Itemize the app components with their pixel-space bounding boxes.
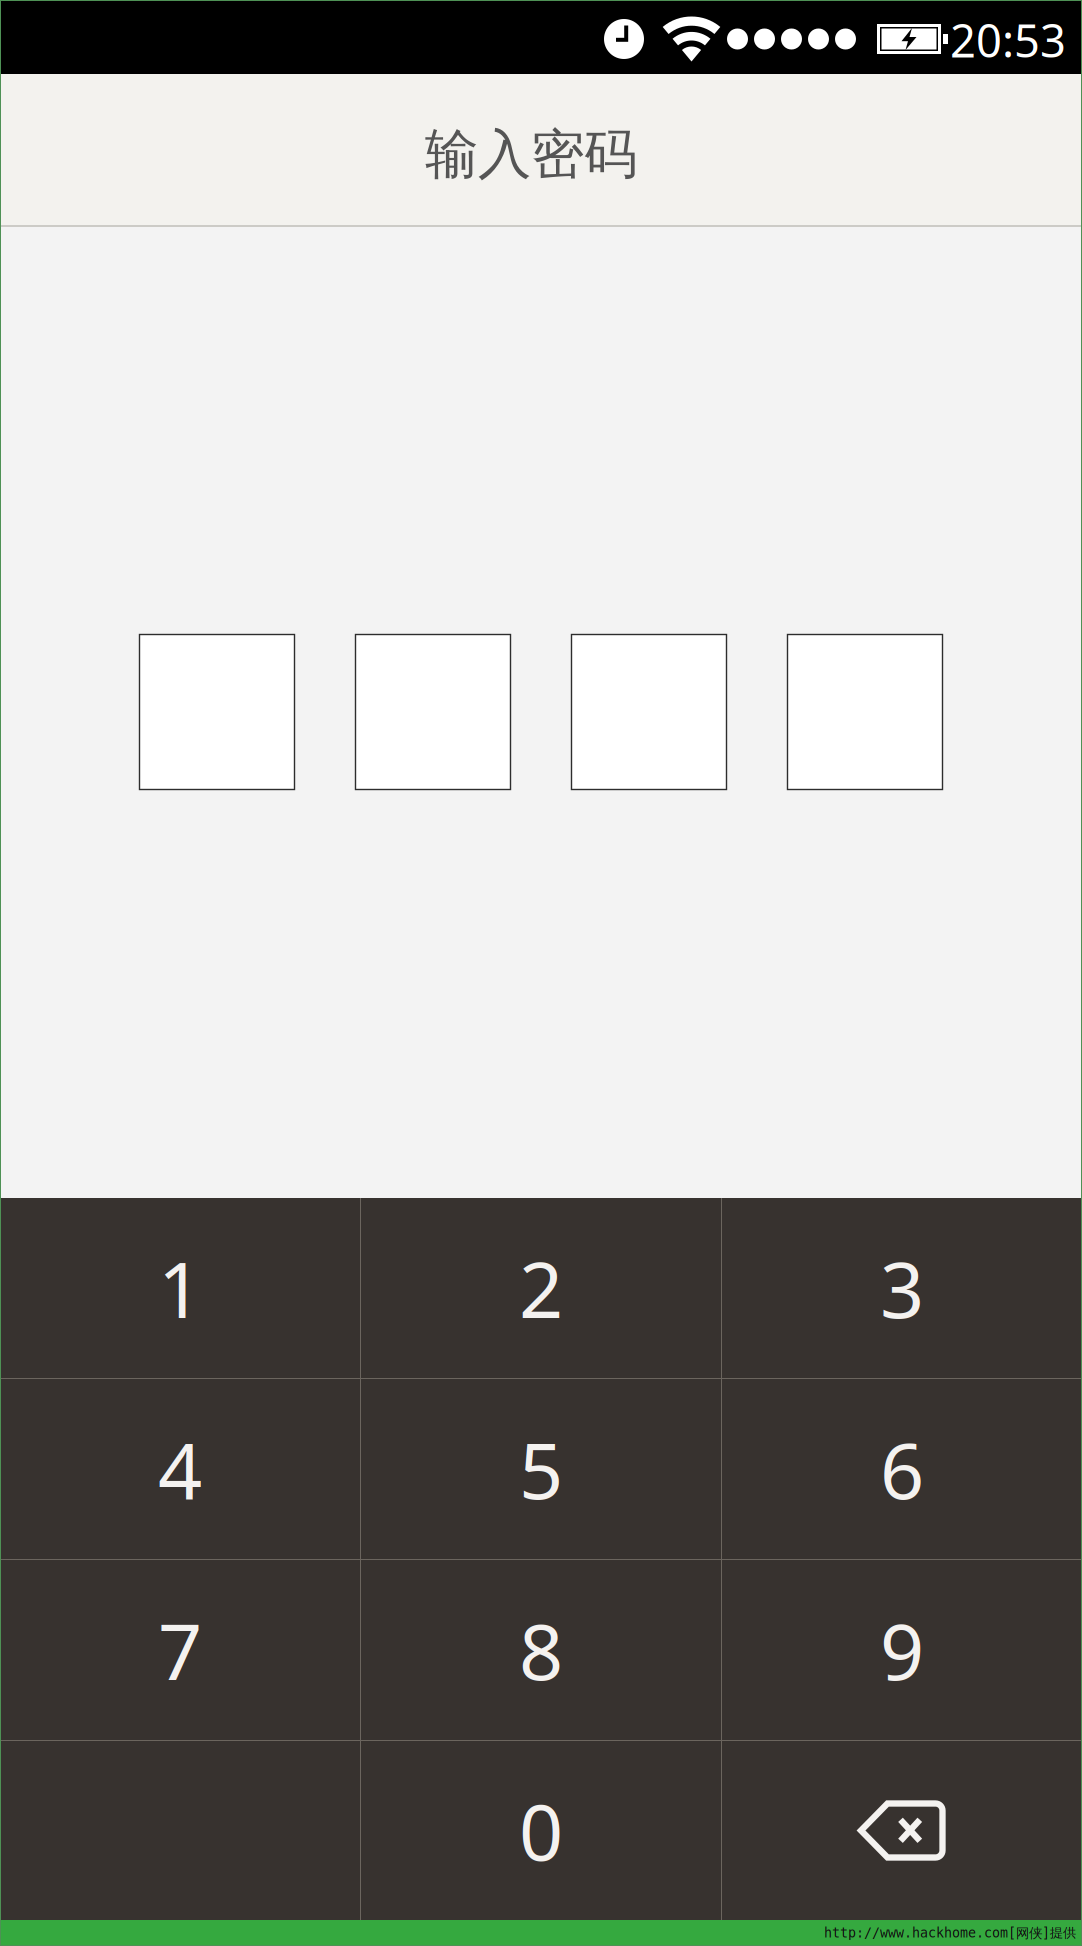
button[interactable]: 9: [722, 1560, 1082, 1740]
staticText: 5: [519, 1418, 563, 1520]
button[interactable]: 0: [361, 1741, 721, 1920]
staticText: 8: [519, 1599, 563, 1701]
button[interactable]: 1: [0, 1198, 360, 1378]
button[interactable]: 2: [361, 1198, 721, 1378]
staticText: 2: [519, 1237, 563, 1339]
staticText: 7: [158, 1599, 202, 1701]
staticText: 9: [880, 1599, 924, 1701]
button[interactable]: Delete: [722, 1741, 1082, 1920]
staticText: 3: [880, 1237, 924, 1339]
staticText: 6: [880, 1418, 924, 1520]
staticText: 输入密码: [425, 122, 637, 187]
button[interactable]: Password: [139, 634, 943, 790]
button[interactable]: 6: [722, 1379, 1082, 1559]
staticText: 4: [158, 1418, 202, 1520]
button[interactable]: 4: [0, 1379, 360, 1559]
button[interactable]: 7: [0, 1560, 360, 1740]
staticText: 20:53: [950, 10, 1066, 70]
button[interactable]: 3: [722, 1198, 1082, 1378]
staticText: http://www.hackhome.com[网侠]提供: [824, 1925, 1076, 1941]
button[interactable]: 8: [361, 1560, 721, 1740]
button[interactable]: 5: [361, 1379, 721, 1559]
staticText: 0: [519, 1779, 563, 1882]
staticText: 1: [158, 1237, 202, 1339]
